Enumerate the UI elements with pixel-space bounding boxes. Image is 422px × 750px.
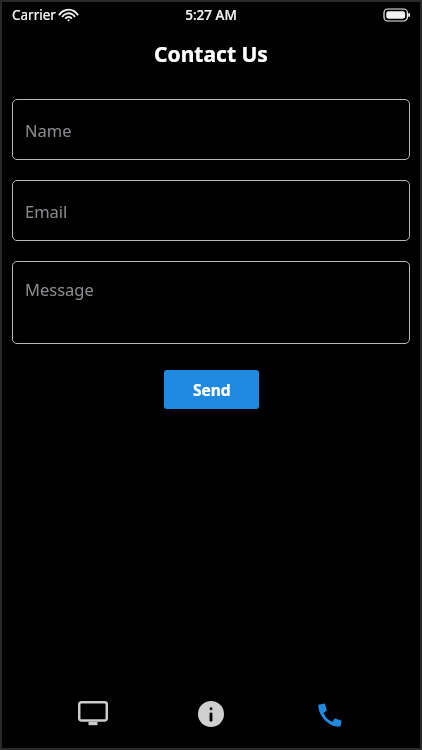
button[interactable]: Message bbox=[12, 261, 410, 344]
button[interactable]: Name bbox=[12, 99, 410, 160]
staticText: Email bbox=[25, 200, 68, 222]
button[interactable]: Email bbox=[12, 180, 410, 241]
button[interactable]: TV bbox=[65, 686, 121, 742]
staticText: Send bbox=[193, 379, 231, 400]
staticText: Carrier bbox=[12, 6, 56, 24]
button[interactable]: Info bbox=[183, 686, 239, 742]
button[interactable]: Call bbox=[302, 686, 358, 742]
staticText: Contact Us bbox=[154, 40, 268, 69]
staticText: Name bbox=[25, 119, 72, 141]
staticText: 5:27 AM bbox=[185, 6, 237, 24]
staticText: Message bbox=[25, 278, 94, 300]
button[interactable]: Send bbox=[164, 370, 259, 409]
